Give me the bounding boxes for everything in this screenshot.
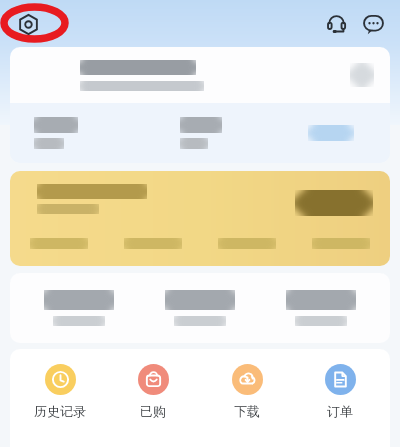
staticText: 历史记录 xyxy=(34,403,86,419)
staticText: 下载 xyxy=(234,403,260,419)
button[interactable] xyxy=(10,47,390,163)
button[interactable] xyxy=(10,171,390,266)
staticText: 订单 xyxy=(327,403,353,419)
button[interactable]: 已购 xyxy=(110,362,196,421)
button[interactable]: 历史记录 xyxy=(17,362,103,421)
button[interactable] xyxy=(295,190,373,216)
button[interactable]: Customer service xyxy=(320,8,352,40)
staticText: 已购 xyxy=(140,403,166,419)
button[interactable]: Messages xyxy=(357,8,389,40)
button[interactable] xyxy=(144,286,256,330)
button[interactable]: 订单 xyxy=(297,362,383,421)
button[interactable] xyxy=(265,286,377,330)
button[interactable] xyxy=(23,286,135,330)
button[interactable]: 下载 xyxy=(204,362,290,421)
button[interactable]: Settings xyxy=(13,9,43,39)
